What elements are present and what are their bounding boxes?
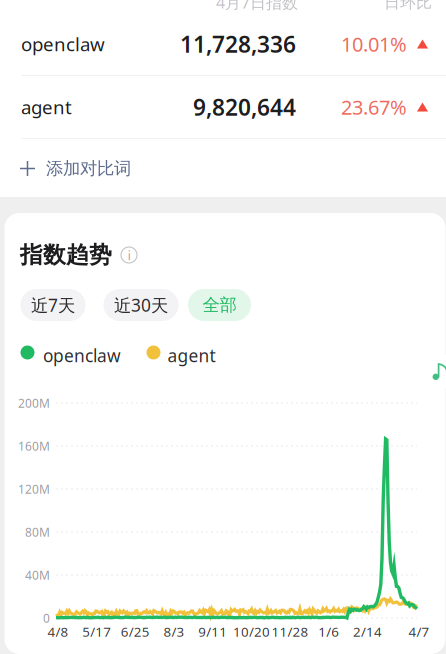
staticText: openclaw	[21, 32, 105, 56]
staticText: 80M	[25, 524, 50, 540]
staticText: 8/3	[163, 623, 184, 640]
staticText: 6/25	[121, 623, 150, 640]
button[interactable]: 添加对比词	[0, 139, 446, 198]
staticText: 9,820,644	[193, 92, 296, 122]
button[interactable]: 全部	[188, 289, 251, 321]
staticText: 添加对比词	[46, 158, 131, 179]
button[interactable]: 近7天	[20, 289, 85, 321]
staticText: 200M	[18, 395, 50, 411]
staticText: openclaw	[43, 344, 121, 367]
staticText: 9/11	[198, 623, 227, 640]
button[interactable]: agent	[0, 76, 446, 138]
staticText: 120M	[18, 481, 50, 497]
staticText: 160M	[18, 438, 50, 454]
staticText: 全部	[202, 294, 236, 316]
staticText: 指数趋势	[20, 241, 112, 269]
staticText: 近30天	[114, 293, 168, 316]
staticText: 11,728,336	[180, 29, 296, 59]
staticText: 4月7日指数	[216, 0, 298, 13]
staticText: 10.01%	[341, 31, 407, 57]
button[interactable]: openclaw	[0, 13, 446, 75]
staticText: 1/6	[318, 623, 339, 640]
staticText: agent	[167, 344, 215, 367]
staticText: 5/17	[82, 623, 111, 640]
staticText: 4/7	[408, 623, 429, 640]
button[interactable]: 近30天	[103, 289, 178, 321]
staticText: agent	[21, 95, 72, 119]
staticText: 2/14	[353, 623, 382, 640]
staticText: 23.67%	[341, 94, 407, 120]
staticText: 10/20	[233, 623, 270, 640]
staticText: 11/28	[272, 623, 309, 640]
staticText: 40M	[25, 567, 50, 583]
staticText: 0	[43, 610, 50, 626]
staticText: 近7天	[31, 293, 75, 316]
staticText: 日环比	[384, 0, 432, 12]
staticText: 4/8	[47, 623, 68, 640]
staticText: i	[127, 246, 130, 264]
